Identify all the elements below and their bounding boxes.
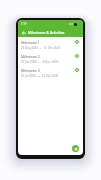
button[interactable]: Milestone 2 [18, 52, 83, 66]
button[interactable]: Back [21, 30, 26, 35]
button[interactable]: Add activity [74, 39, 80, 45]
button[interactable]: Add activity [74, 67, 80, 73]
button[interactable]: Milestone 3 [18, 66, 83, 80]
staticText: 01 Jul 2024 — 31 Dec 2024 [21, 74, 59, 78]
staticText: Milestone 3 [21, 68, 40, 73]
button[interactable]: Add activity [74, 53, 80, 59]
staticText: Milestones & Activities [28, 30, 65, 35]
button[interactable]: Milestone 1 [18, 38, 83, 52]
staticText: 01 Jan 2024 — 30 Jun 2024 [21, 60, 59, 64]
button[interactable]: Add [72, 145, 79, 152]
staticText: Milestone 1 [21, 40, 40, 45]
staticText: 25 Aug 2023 — 31 Dec 2023 [21, 46, 61, 50]
staticText: 1:19 [21, 22, 27, 26]
staticText: Milestone 2 [21, 54, 40, 59]
